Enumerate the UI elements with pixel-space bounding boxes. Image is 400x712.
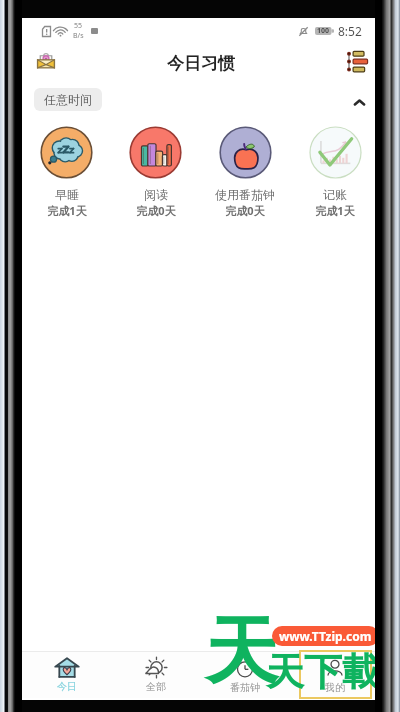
button[interactable]: 使用番茄钟 — [200, 126, 290, 218]
staticText: 我的 — [325, 681, 345, 694]
staticText: 全部 — [146, 680, 166, 693]
staticText: 任意时间 — [44, 92, 92, 107]
button[interactable]: 阅读 — [111, 126, 200, 218]
staticText: 100 — [317, 26, 330, 36]
staticText: 使用番茄钟 — [215, 187, 275, 202]
staticText: 早睡 — [55, 187, 79, 202]
button[interactable]: Messages — [28, 46, 62, 80]
staticText: 天下載 — [266, 648, 380, 696]
staticText: B/s — [73, 31, 84, 41]
button[interactable]: 番茄钟 — [200, 652, 290, 698]
button[interactable]: 记账 — [290, 126, 380, 218]
button[interactable]: Statistics — [342, 48, 372, 78]
button[interactable]: 任意时间 — [34, 88, 102, 111]
button[interactable]: 今日 — [22, 652, 111, 698]
staticText: 记账 — [323, 187, 347, 202]
staticText: 今日 — [57, 680, 77, 693]
staticText: 完成1天 — [315, 203, 355, 218]
button[interactable]: Collapse — [347, 88, 371, 112]
staticText: 8:52 — [338, 23, 362, 39]
staticText: 今日习惯 — [167, 53, 235, 74]
staticText: 完成1天 — [47, 203, 87, 218]
staticText: 阅读 — [144, 187, 168, 202]
staticText: www.TTzip.com — [279, 628, 372, 644]
staticText: 完成0天 — [225, 203, 265, 218]
staticText: 番茄钟 — [230, 681, 260, 694]
staticText: 完成0天 — [136, 203, 176, 218]
button[interactable]: 早睡 — [22, 126, 111, 218]
staticText: 天 — [205, 606, 278, 698]
button[interactable]: 全部 — [111, 652, 200, 698]
button[interactable]: 我的 — [290, 652, 380, 698]
staticText: 55 — [74, 21, 83, 31]
